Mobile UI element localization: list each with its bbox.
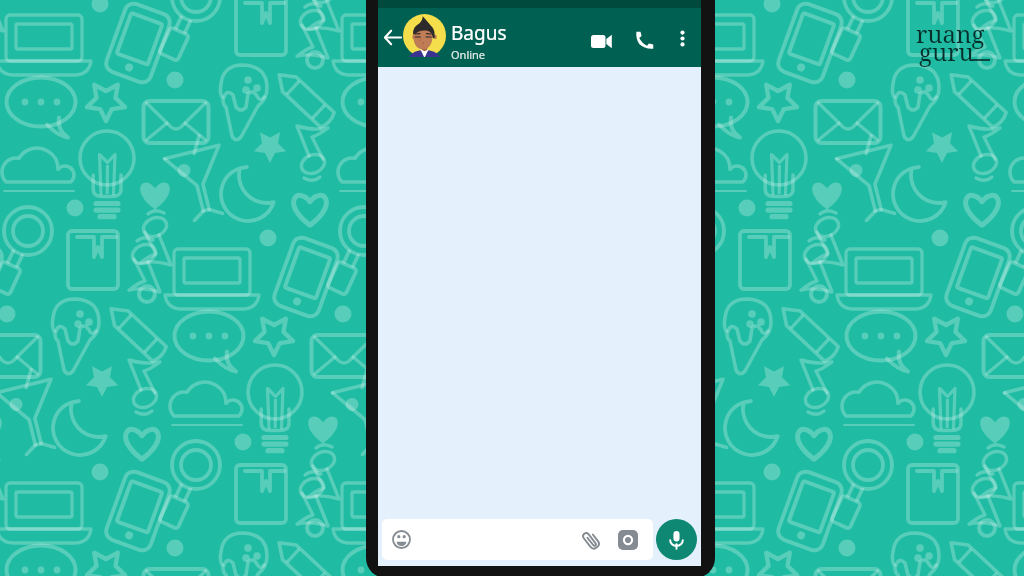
button[interactable]: Back <box>380 25 405 50</box>
button[interactable]: Camera <box>618 530 638 550</box>
button[interactable]: Attach <box>580 529 601 550</box>
staticText: Bagus <box>451 20 507 46</box>
staticText: ruang <box>916 17 985 50</box>
button[interactable]: Voice call <box>632 27 658 53</box>
staticText: guru <box>919 35 974 68</box>
button[interactable]: Video call <box>587 27 615 55</box>
staticText: Online <box>451 47 486 62</box>
button[interactable]: More options <box>671 27 694 50</box>
button[interactable]: Record voice message <box>656 519 697 560</box>
button[interactable]: Emoji <box>382 519 653 560</box>
button[interactable]: Emoji <box>391 529 412 550</box>
